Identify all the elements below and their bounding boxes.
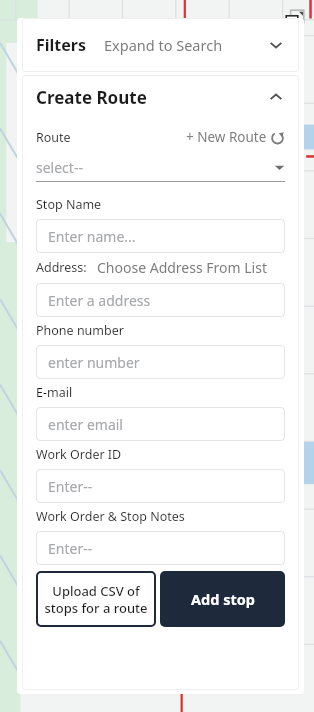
staticText: + New Route [186, 128, 267, 146]
button[interactable]: Enter-- [36, 469, 285, 503]
staticText: Route [36, 129, 71, 146]
staticText: enter number [48, 353, 140, 372]
button[interactable]: Upload CSV of stops for a route [36, 571, 156, 627]
staticText: Enter-- [48, 477, 93, 496]
staticText: Address: [36, 259, 87, 276]
staticText: Enter a address [48, 291, 151, 310]
button[interactable]: Create Route [36, 75, 285, 119]
staticText: Work Order ID [36, 446, 122, 463]
button[interactable]: Choose Address From List [97, 258, 267, 277]
button[interactable]: Enter a address [36, 283, 285, 317]
staticText: Enter-- [48, 539, 93, 558]
staticText: enter email [48, 415, 123, 434]
staticText: Create Route [36, 86, 147, 109]
staticText: E-mail [36, 384, 73, 401]
staticText: Upload CSV of stops for a route [44, 582, 148, 617]
button[interactable]: enter number [36, 345, 285, 379]
staticText: Enter name... [48, 227, 136, 246]
button[interactable]: Add stop [160, 571, 285, 627]
button[interactable]: Enter-- [36, 531, 285, 565]
staticText: Add stop [191, 589, 255, 609]
button[interactable]: Filters [22, 18, 299, 72]
button[interactable]: select-- [36, 157, 285, 182]
button[interactable]: Restore window [282, 6, 308, 32]
button[interactable]: + New Route [186, 128, 285, 146]
staticText: Expand to Search [104, 35, 223, 55]
staticText: Stop Name [36, 196, 102, 213]
staticText: Filters [36, 34, 87, 56]
staticText: Work Order & Stop Notes [36, 508, 185, 525]
staticText: select-- [36, 158, 83, 177]
button[interactable]: Enter name... [36, 219, 285, 253]
staticText: Phone number [36, 322, 124, 339]
button[interactable]: enter email [36, 407, 285, 441]
